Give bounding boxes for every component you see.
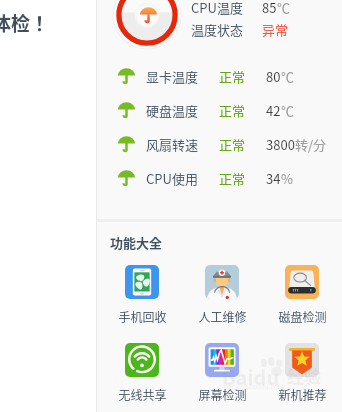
- staticText: ℃: [281, 101, 295, 120]
- button[interactable]: 硬盘温度: [97, 93, 342, 127]
- staticText: ℃: [281, 67, 295, 86]
- other: 人工维修: [205, 265, 239, 299]
- staticText: 人工维修: [198, 308, 247, 325]
- staticText: 磁盘检测: [278, 308, 327, 325]
- staticText: 体检！: [0, 9, 50, 37]
- other: 屏幕检测: [205, 343, 239, 377]
- staticText: 异常: [262, 20, 289, 39]
- staticText: 3800: [266, 135, 295, 154]
- button[interactable]: 显卡温度: [97, 59, 342, 93]
- staticText: 风扇转速: [146, 135, 199, 154]
- staticText: 转/分: [295, 135, 327, 154]
- button[interactable]: 新机推荐: [267, 343, 337, 403]
- staticText: 屏幕检测: [198, 386, 247, 403]
- staticText: 显卡温度: [146, 67, 199, 86]
- staticText: 无线共享: [118, 386, 167, 403]
- other: 无线共享: [125, 343, 159, 377]
- staticText: 42: [266, 101, 281, 120]
- button[interactable]: 屏幕检测: [187, 343, 257, 403]
- staticText: 正常: [219, 101, 246, 120]
- staticText: 80: [266, 67, 281, 86]
- staticText: 经验: [287, 363, 321, 388]
- other: 新机推荐: [285, 343, 319, 377]
- staticText: 温度状态: [191, 20, 244, 39]
- staticText: CPU温度: [191, 0, 243, 17]
- staticText: 正常: [219, 169, 246, 188]
- staticText: 正常: [219, 135, 246, 154]
- button[interactable]: 人工维修: [187, 265, 257, 325]
- staticText: 34: [266, 169, 281, 188]
- button[interactable]: 磁盘检测: [267, 265, 337, 325]
- other: 磁盘检测: [285, 265, 319, 299]
- staticText: 功能大全: [110, 233, 163, 252]
- staticText: Baidu: [222, 362, 280, 391]
- staticText: jingyan.baidu.com: [224, 381, 285, 391]
- staticText: CPU使用: [146, 169, 198, 188]
- staticText: %: [281, 169, 293, 188]
- staticText: 正常: [219, 67, 246, 86]
- button[interactable]: CPU使用: [97, 161, 342, 195]
- button[interactable]: 风扇转速: [97, 127, 342, 161]
- other: 手机回收: [125, 265, 159, 299]
- button[interactable]: 无线共享: [107, 343, 177, 403]
- staticText: 手机回收: [118, 308, 167, 325]
- staticText: 新机推荐: [278, 386, 327, 403]
- button[interactable]: 手机回收: [107, 265, 177, 325]
- staticText: 硬盘温度: [146, 101, 199, 120]
- staticText: 85: [262, 0, 277, 17]
- staticText: ℃: [277, 0, 291, 17]
